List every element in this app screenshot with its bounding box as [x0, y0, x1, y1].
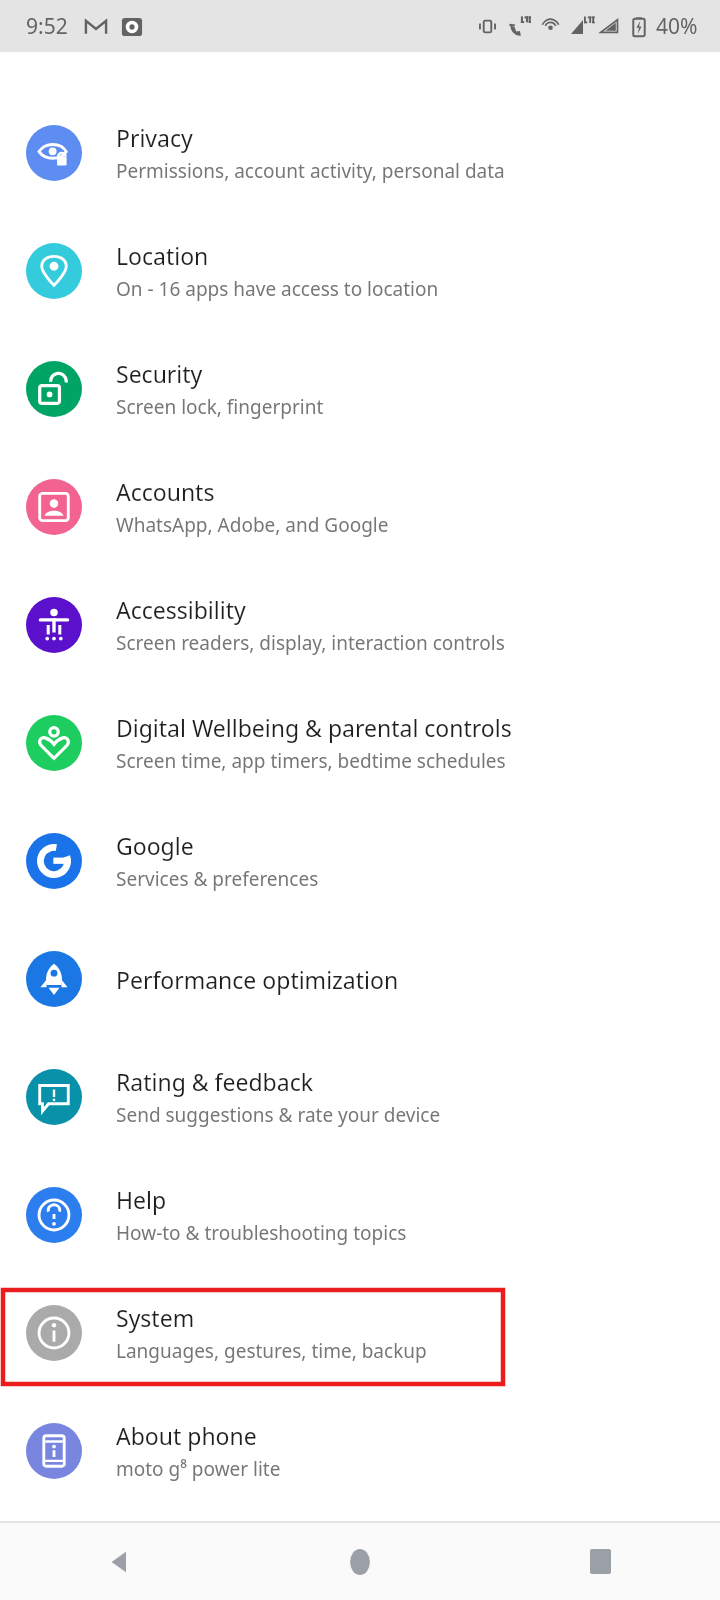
- button[interactable]: Performance optimization: [0, 920, 720, 1038]
- staticText: Permissions, account activity, personal …: [116, 158, 505, 184]
- button[interactable]: Digital Wellbeing & parental controls: [0, 684, 720, 802]
- staticText: Rating & feedback: [116, 1066, 313, 1097]
- staticText: About phone: [116, 1420, 257, 1451]
- button[interactable]: Home: [240, 1523, 480, 1600]
- staticText: How-to & troubleshooting topics: [116, 1220, 407, 1246]
- staticText: Privacy: [116, 122, 193, 153]
- staticText: On - 16 apps have access to location: [116, 276, 439, 302]
- staticText: Accessibility: [116, 594, 246, 625]
- staticText: Languages, gestures, time, backup: [116, 1338, 427, 1364]
- button[interactable]: System: [0, 1274, 720, 1392]
- button[interactable]: Rating & feedback: [0, 1038, 720, 1156]
- button[interactable]: Location: [0, 212, 720, 330]
- button[interactable]: Accounts: [0, 448, 720, 566]
- button[interactable]: Recent apps: [480, 1523, 720, 1600]
- staticText: WhatsApp, Adobe, and Google: [116, 512, 389, 538]
- staticText: moto g⁸ power lite: [116, 1456, 281, 1482]
- staticText: 40%: [656, 12, 698, 41]
- staticText: Help: [116, 1184, 167, 1215]
- staticText: Screen time, app timers, bedtime schedul…: [116, 748, 506, 774]
- button[interactable]: About phone: [0, 1392, 720, 1510]
- staticText: System: [116, 1302, 195, 1333]
- button[interactable]: Privacy: [0, 94, 720, 212]
- staticText: 9:52: [26, 12, 68, 41]
- staticText: Security: [116, 358, 203, 389]
- button[interactable]: Help: [0, 1156, 720, 1274]
- staticText: Location: [116, 240, 209, 271]
- staticText: Screen lock, fingerprint: [116, 394, 324, 420]
- staticText: Services & preferences: [116, 866, 319, 892]
- button[interactable]: Back: [0, 1523, 240, 1600]
- staticText: Performance optimization: [116, 964, 399, 995]
- button[interactable]: Google: [0, 802, 720, 920]
- staticText: Screen readers, display, interaction con…: [116, 630, 505, 656]
- button[interactable]: Security: [0, 330, 720, 448]
- staticText: Google: [116, 830, 194, 861]
- staticText: Accounts: [116, 476, 215, 507]
- staticText: Send suggestions & rate your device: [116, 1102, 441, 1128]
- staticText: Digital Wellbeing & parental controls: [116, 712, 512, 743]
- button[interactable]: Accessibility: [0, 566, 720, 684]
